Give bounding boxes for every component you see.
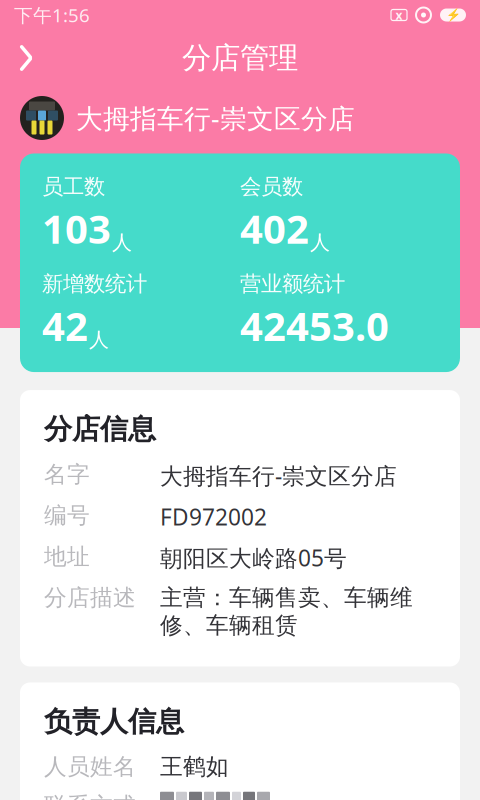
staticText: 下午1:56 (14, 3, 90, 27)
staticText: 会员数 (240, 173, 303, 200)
staticText: ⚡ (445, 8, 460, 22)
staticText: 42 (42, 299, 88, 352)
staticText: 大拇指车行-崇文区分店 (160, 460, 397, 491)
staticText: 人 (112, 230, 132, 255)
staticText: 402 (240, 202, 309, 255)
staticText: 地址 (44, 543, 90, 570)
staticText: 42453.0 (240, 299, 389, 352)
staticText: x (395, 7, 402, 23)
staticText: 大拇指车行-崇文区分店 (76, 100, 355, 136)
staticText: 王鹤如 (160, 753, 229, 781)
staticText: 分店信息 (44, 412, 156, 446)
staticText: 人 (89, 327, 109, 352)
staticText: 联系方式 (44, 792, 136, 800)
staticText: 朝阳区大岭路05号 (160, 543, 347, 573)
staticText: 负责人信息 (44, 704, 184, 739)
staticText: 人 (310, 230, 330, 255)
staticText: 员工数 (42, 173, 105, 200)
staticText: FD972002 (160, 502, 267, 532)
button[interactable]: 返回 (0, 32, 52, 84)
staticText: 新增数统计 (42, 271, 147, 297)
staticText: 主营：车辆售卖、车辆维修、车辆租赁 (160, 584, 413, 639)
staticText: 营业额统计 (240, 271, 345, 297)
staticText: 名字 (44, 460, 90, 488)
staticText: 编号 (44, 502, 90, 529)
staticText: 103 (42, 202, 111, 255)
button[interactable]: 大拇指车行-崇文区分店 (0, 86, 480, 150)
staticText: 人员姓名 (44, 753, 136, 781)
staticText: 分店管理 (182, 40, 298, 76)
staticText: 分店描述 (44, 584, 136, 612)
